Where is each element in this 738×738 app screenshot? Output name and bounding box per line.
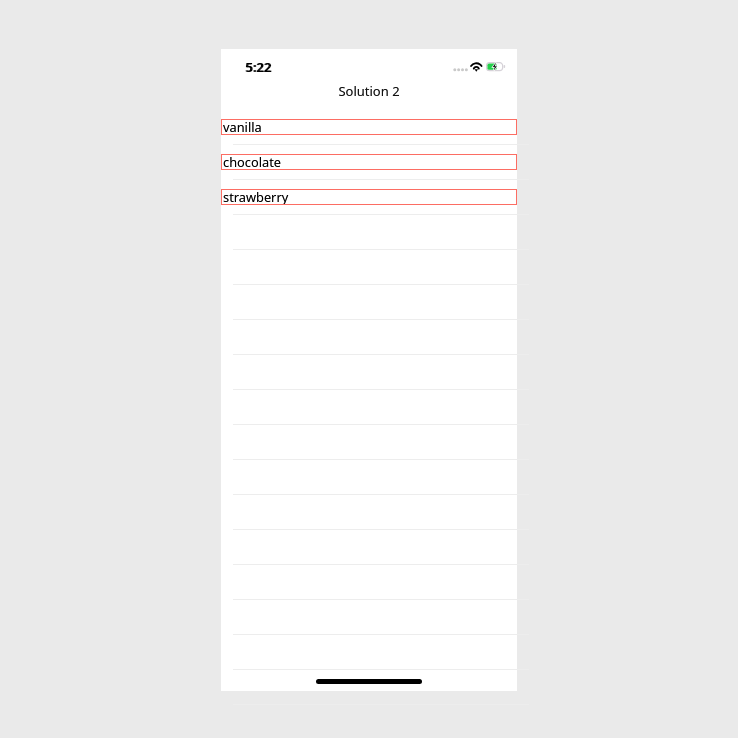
button[interactable]: vanilla — [221, 119, 517, 154]
other: Wi-Fi — [470, 62, 483, 75]
button[interactable]: chocolate — [221, 154, 517, 189]
other: Battery charging — [486, 60, 507, 73]
staticText: 5:22 — [245, 58, 271, 76]
staticText: Solution 2 — [338, 82, 400, 100]
button[interactable]: strawberry — [221, 189, 517, 224]
staticText: chocolate — [223, 153, 281, 169]
staticText: strawberry — [223, 188, 289, 204]
staticText: vanilla — [223, 118, 262, 134]
other: Cellular signal — [452, 63, 468, 75]
